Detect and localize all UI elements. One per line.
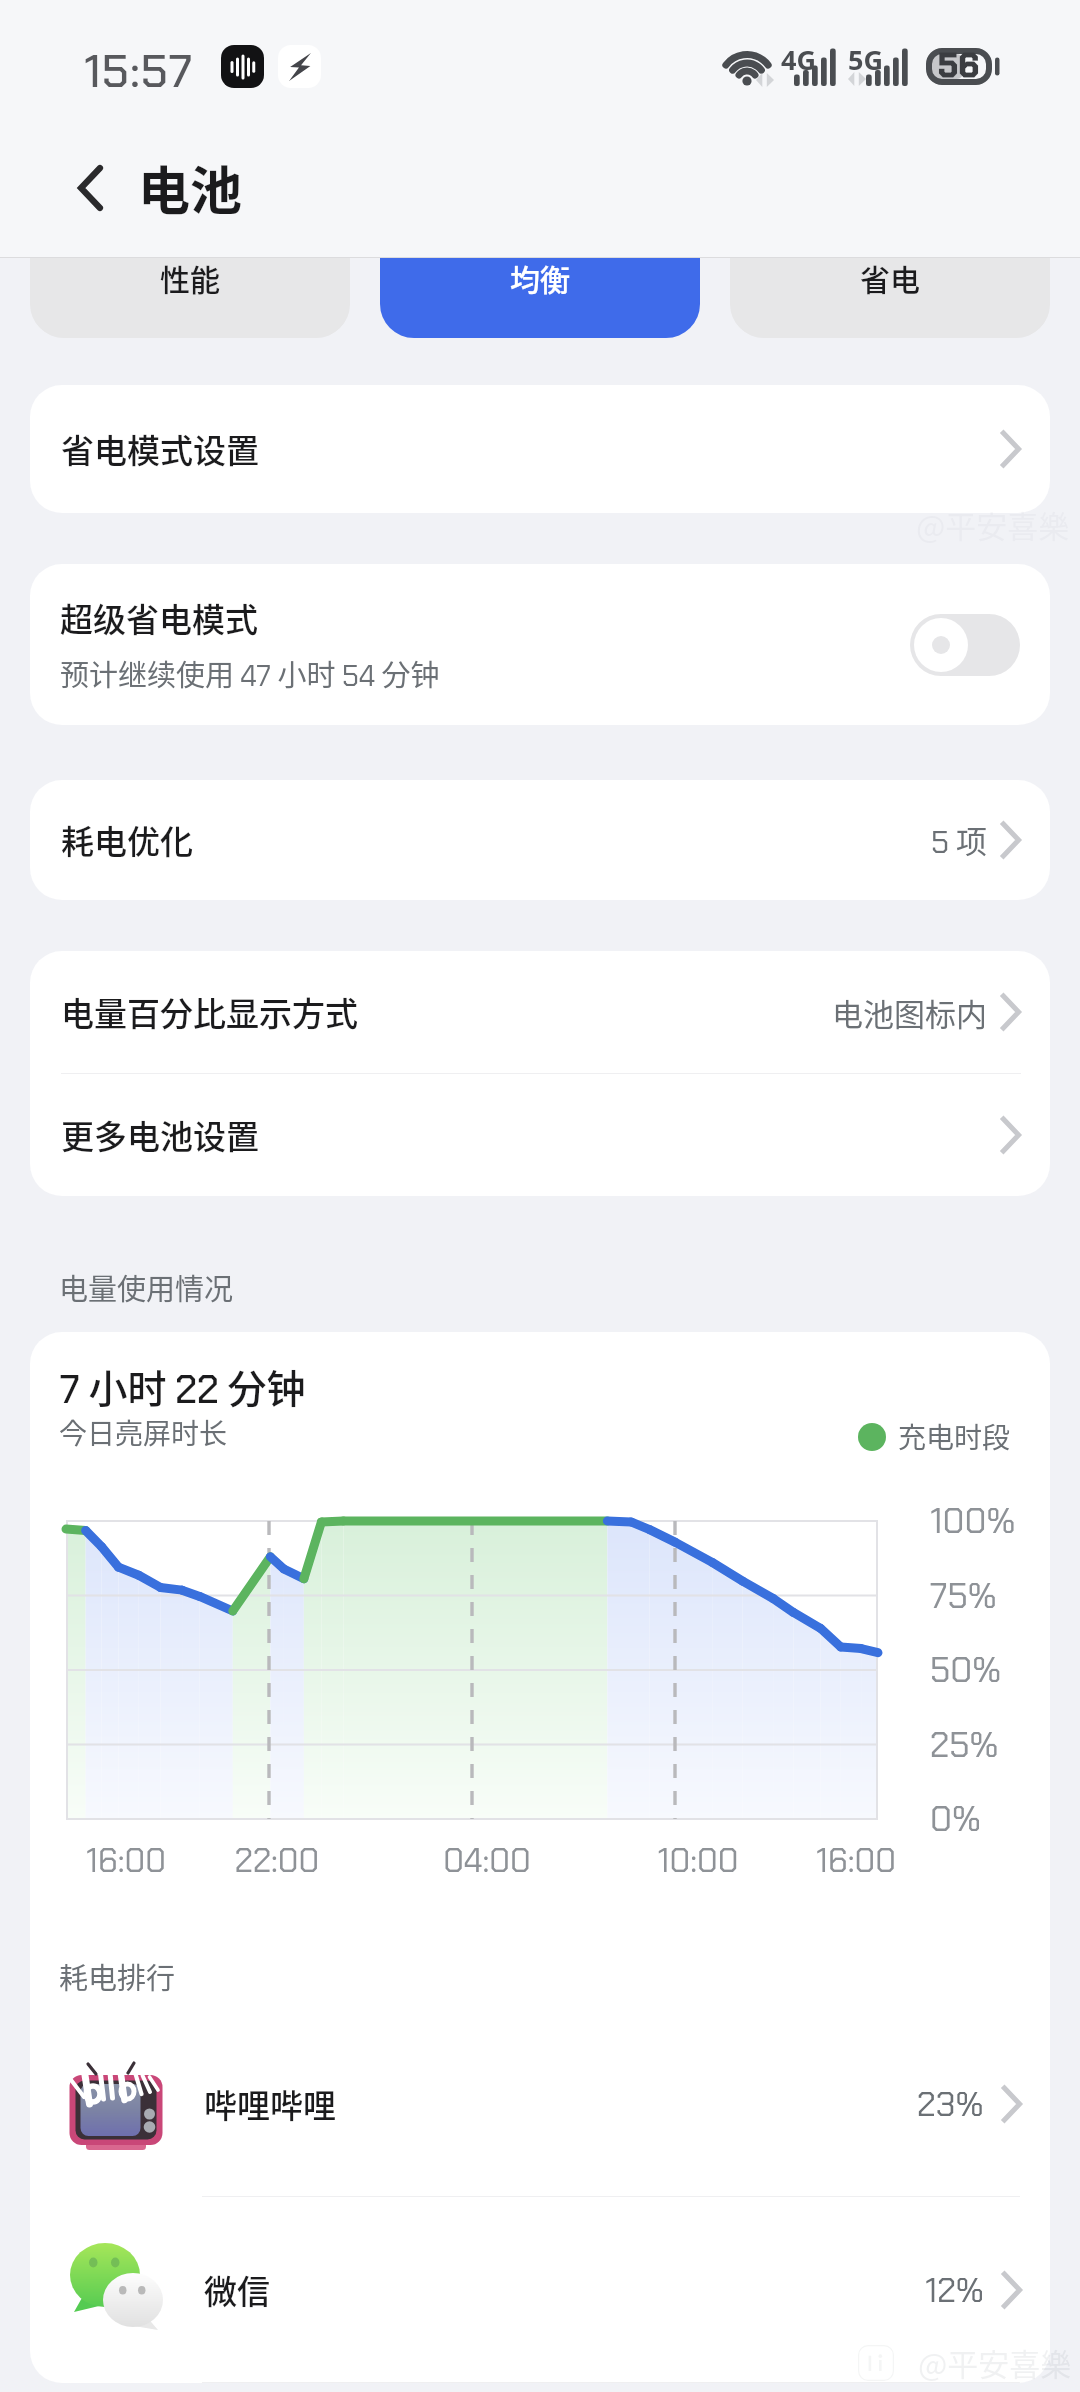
button[interactable]: 微信 [30, 2197, 1050, 2382]
staticText: 省电 [860, 258, 920, 299]
staticText: 5 项 [931, 817, 987, 863]
staticText: 省电模式设置 [61, 425, 259, 473]
staticText: 16:00 [66, 1839, 186, 1882]
staticText: 23% [917, 2082, 984, 2126]
staticText: 预计继续使用 47 小时 54 分钟 [60, 652, 440, 695]
staticText: 电池 [138, 150, 243, 225]
staticText: 哔哩哔哩 [204, 2080, 336, 2128]
staticText: 10:00 [638, 1839, 758, 1882]
staticText: 4G [781, 41, 816, 78]
staticText: 7 小时 22 分钟 [60, 1358, 306, 1415]
button[interactable]: 更多电池设置 [30, 1074, 1050, 1196]
staticText: 12% [925, 2268, 984, 2312]
staticText: 性能 [160, 258, 220, 299]
staticText: 56 [938, 44, 980, 81]
staticText: 04:00 [427, 1839, 547, 1882]
staticText: 0% [930, 1796, 981, 1842]
staticText: @平安喜樂 [918, 2340, 1072, 2385]
button[interactable]: 均衡 [380, 258, 700, 338]
button[interactable]: Toggle super power saving [910, 614, 1020, 676]
staticText: 电量百分比显示方式 [61, 988, 358, 1036]
button[interactable]: 耗电优化 [30, 780, 1050, 900]
button[interactable]: 性能 [30, 258, 350, 338]
button[interactable]: Back [0, 118, 138, 257]
staticText: 75% [930, 1573, 997, 1619]
button[interactable]: 电量百分比显示方式 [30, 951, 1050, 1073]
staticText: 充电时段 [898, 1416, 1011, 1457]
staticText: 更多电池设置 [61, 1111, 259, 1159]
button[interactable]: 省电 [730, 258, 1050, 338]
staticText: 5G [848, 41, 883, 78]
staticText: 电池图标内 [832, 990, 987, 1035]
button[interactable]: 哔哩哔哩 [30, 2011, 1050, 2196]
staticText: 15:57 [84, 41, 194, 101]
button[interactable]: 超级省电模式 [30, 564, 1050, 725]
staticText: 电量使用情况 [59, 1266, 234, 1308]
staticText: 22:00 [217, 1839, 337, 1882]
staticText: 超级省电模式 [60, 594, 258, 642]
staticText: 16:00 [796, 1839, 916, 1882]
button[interactable]: 省电模式设置 [30, 385, 1050, 513]
staticText: 100% [930, 1498, 1016, 1544]
staticText: 均衡 [510, 258, 570, 299]
staticText: 耗电排行 [59, 1955, 176, 1997]
staticText: 25% [930, 1722, 999, 1768]
staticText: 50% [930, 1647, 1002, 1693]
staticText: 微信 [204, 2266, 270, 2314]
staticText: 耗电优化 [61, 816, 193, 864]
staticText: @平安喜樂 [916, 502, 1070, 547]
staticText: 今日亮屏时长 [59, 1412, 228, 1453]
